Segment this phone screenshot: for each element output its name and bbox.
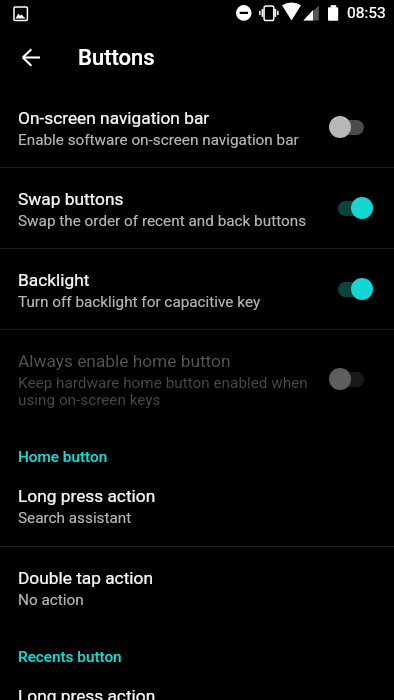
button[interactable]: Navigate up	[7, 33, 55, 81]
staticText: No action	[18, 591, 84, 609]
button[interactable]: Double tap action	[0, 547, 394, 628]
staticText: Double tap action	[18, 568, 153, 588]
staticText: On-screen navigation bar	[18, 108, 210, 128]
staticText: Long press action	[18, 686, 156, 700]
button[interactable]: Always enable home button	[0, 330, 394, 428]
button[interactable]: Swap buttons	[0, 168, 394, 248]
button[interactable]: Long press action	[0, 665, 394, 700]
staticText: Enable software on-screen navigation bar	[18, 131, 299, 149]
staticText: Swap buttons	[18, 189, 124, 209]
staticText: Turn off backlight for capacitive key	[18, 293, 261, 311]
staticText: Home button	[18, 448, 108, 466]
button[interactable]: Backlight	[0, 249, 394, 329]
staticText: Backlight	[18, 270, 90, 290]
button[interactable]: Long press action	[0, 465, 394, 546]
staticText: 08:53	[347, 4, 386, 22]
button[interactable]: On-screen navigation bar	[0, 87, 394, 167]
staticText: Long press action	[18, 486, 156, 506]
staticText: Buttons	[78, 45, 155, 71]
staticText: Always enable home button	[18, 351, 231, 371]
staticText: Keep hardware home button enabled when u…	[18, 374, 318, 408]
staticText: Recents button	[18, 648, 122, 666]
staticText: Search assistant	[18, 509, 132, 527]
staticText: Swap the order of recent and back button…	[18, 212, 307, 230]
